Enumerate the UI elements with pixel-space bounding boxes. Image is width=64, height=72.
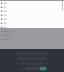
button[interactable] [0,13,64,17]
button[interactable] [0,1,64,5]
button[interactable] [0,25,64,29]
button[interactable] [0,5,64,9]
button[interactable] [0,9,64,13]
button[interactable] [0,21,64,25]
button[interactable] [0,17,64,21]
